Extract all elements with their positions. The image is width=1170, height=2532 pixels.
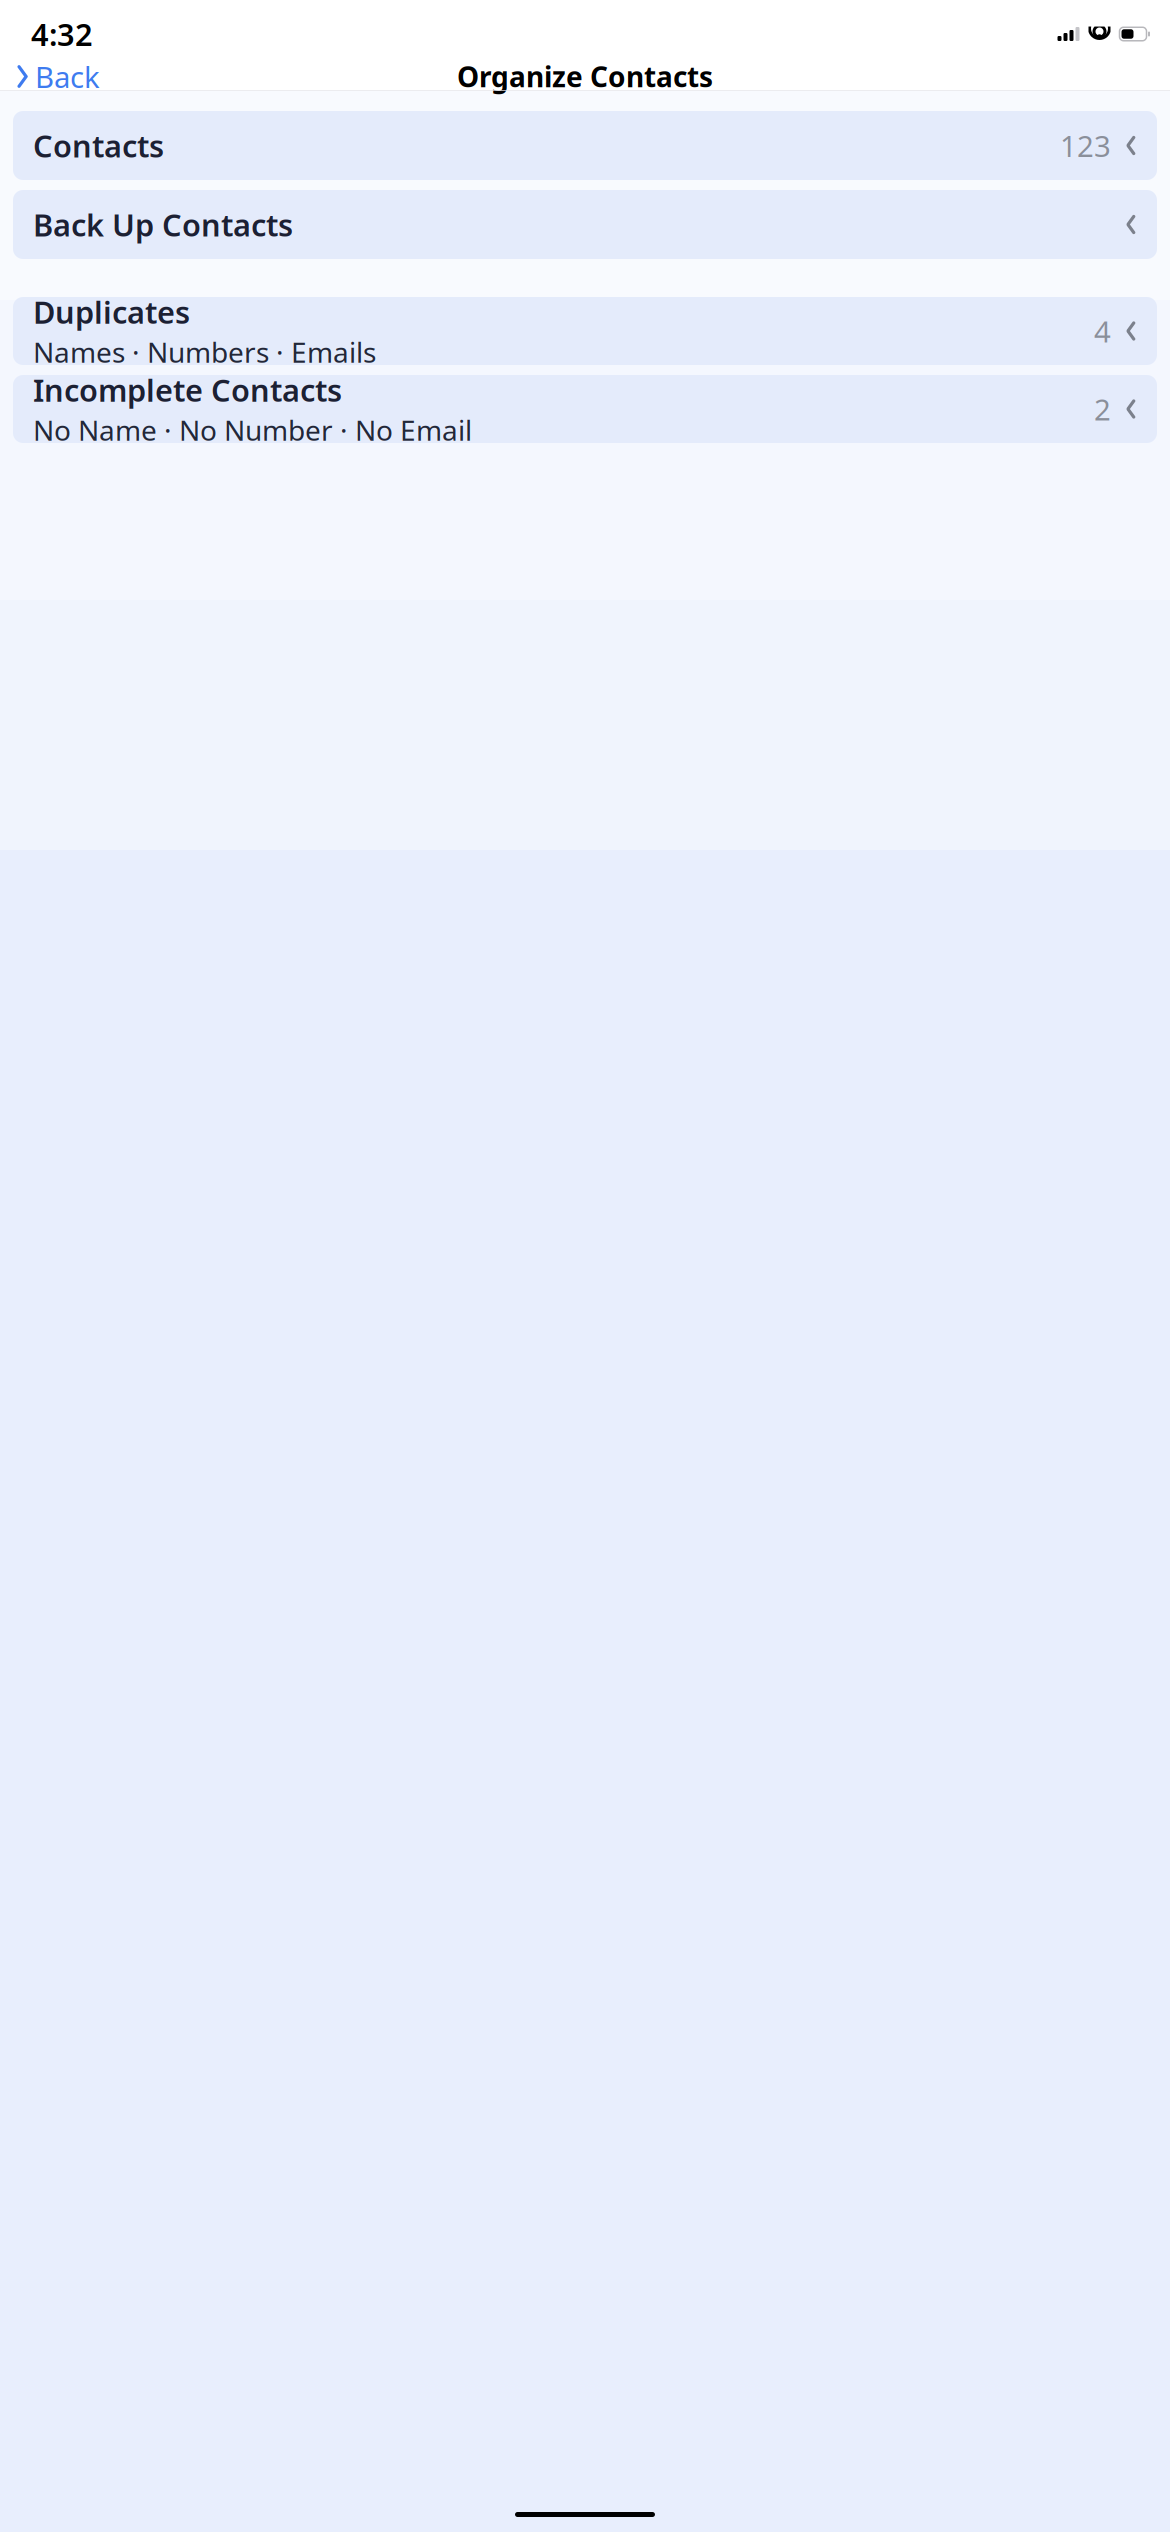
staticText: Names · Numbers · Emails (33, 333, 376, 370)
staticText: Back (35, 57, 100, 96)
staticText: Contacts (33, 125, 164, 166)
staticText: Duplicates (33, 291, 190, 332)
button[interactable]: Contacts (13, 111, 1157, 180)
staticText: No Name · No Number · No Email (33, 411, 472, 448)
staticText: Back Up Contacts (33, 204, 293, 245)
staticText: 4:32 (31, 14, 93, 54)
staticText: Incomplete Contacts (33, 369, 342, 410)
button[interactable]: Incomplete Contacts (13, 375, 1157, 443)
button[interactable]: Back Up Contacts (13, 190, 1157, 259)
staticText: 2 (1094, 389, 1111, 428)
button[interactable]: Duplicates (13, 297, 1157, 365)
staticText: 123 (1060, 126, 1111, 165)
button[interactable]: Back (10, 49, 100, 104)
staticText: 4 (1094, 311, 1111, 350)
staticText: Organize Contacts (457, 58, 713, 95)
